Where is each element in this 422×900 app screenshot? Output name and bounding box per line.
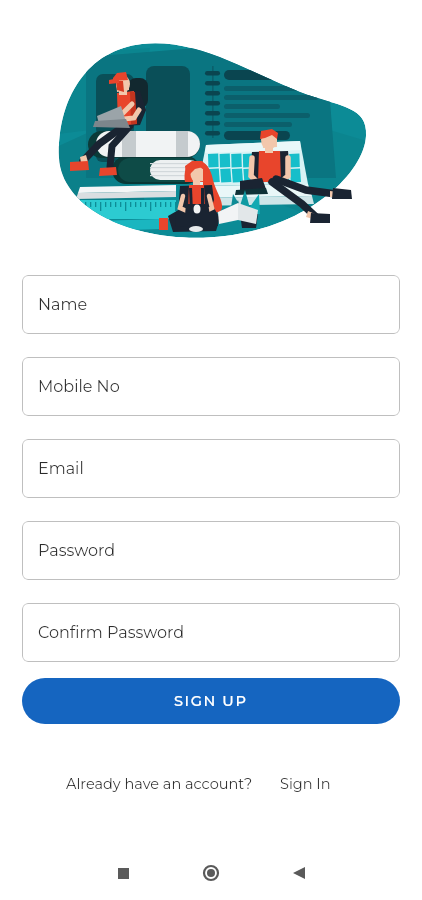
staticText: Name bbox=[38, 295, 88, 315]
button[interactable]: Home bbox=[183, 846, 239, 900]
staticText: Mobile No bbox=[38, 377, 120, 397]
staticText: SIGN UP bbox=[174, 692, 248, 710]
staticText: Email bbox=[38, 459, 84, 479]
staticText: Already have an account? bbox=[66, 775, 253, 793]
button[interactable]: SIGN UP bbox=[22, 678, 400, 724]
button[interactable]: Recents bbox=[95, 846, 151, 900]
staticText: Sign In bbox=[280, 775, 331, 793]
staticText: Confirm Password bbox=[38, 623, 185, 643]
staticText: Password bbox=[38, 541, 116, 561]
button[interactable]: Email bbox=[22, 439, 400, 498]
button[interactable]: Sign In bbox=[280, 775, 331, 793]
button[interactable]: Back bbox=[271, 846, 327, 900]
button[interactable]: Mobile No bbox=[22, 357, 400, 416]
button[interactable]: Confirm Password bbox=[22, 603, 400, 662]
button[interactable]: Password bbox=[22, 521, 400, 580]
button[interactable]: Name bbox=[22, 275, 400, 334]
